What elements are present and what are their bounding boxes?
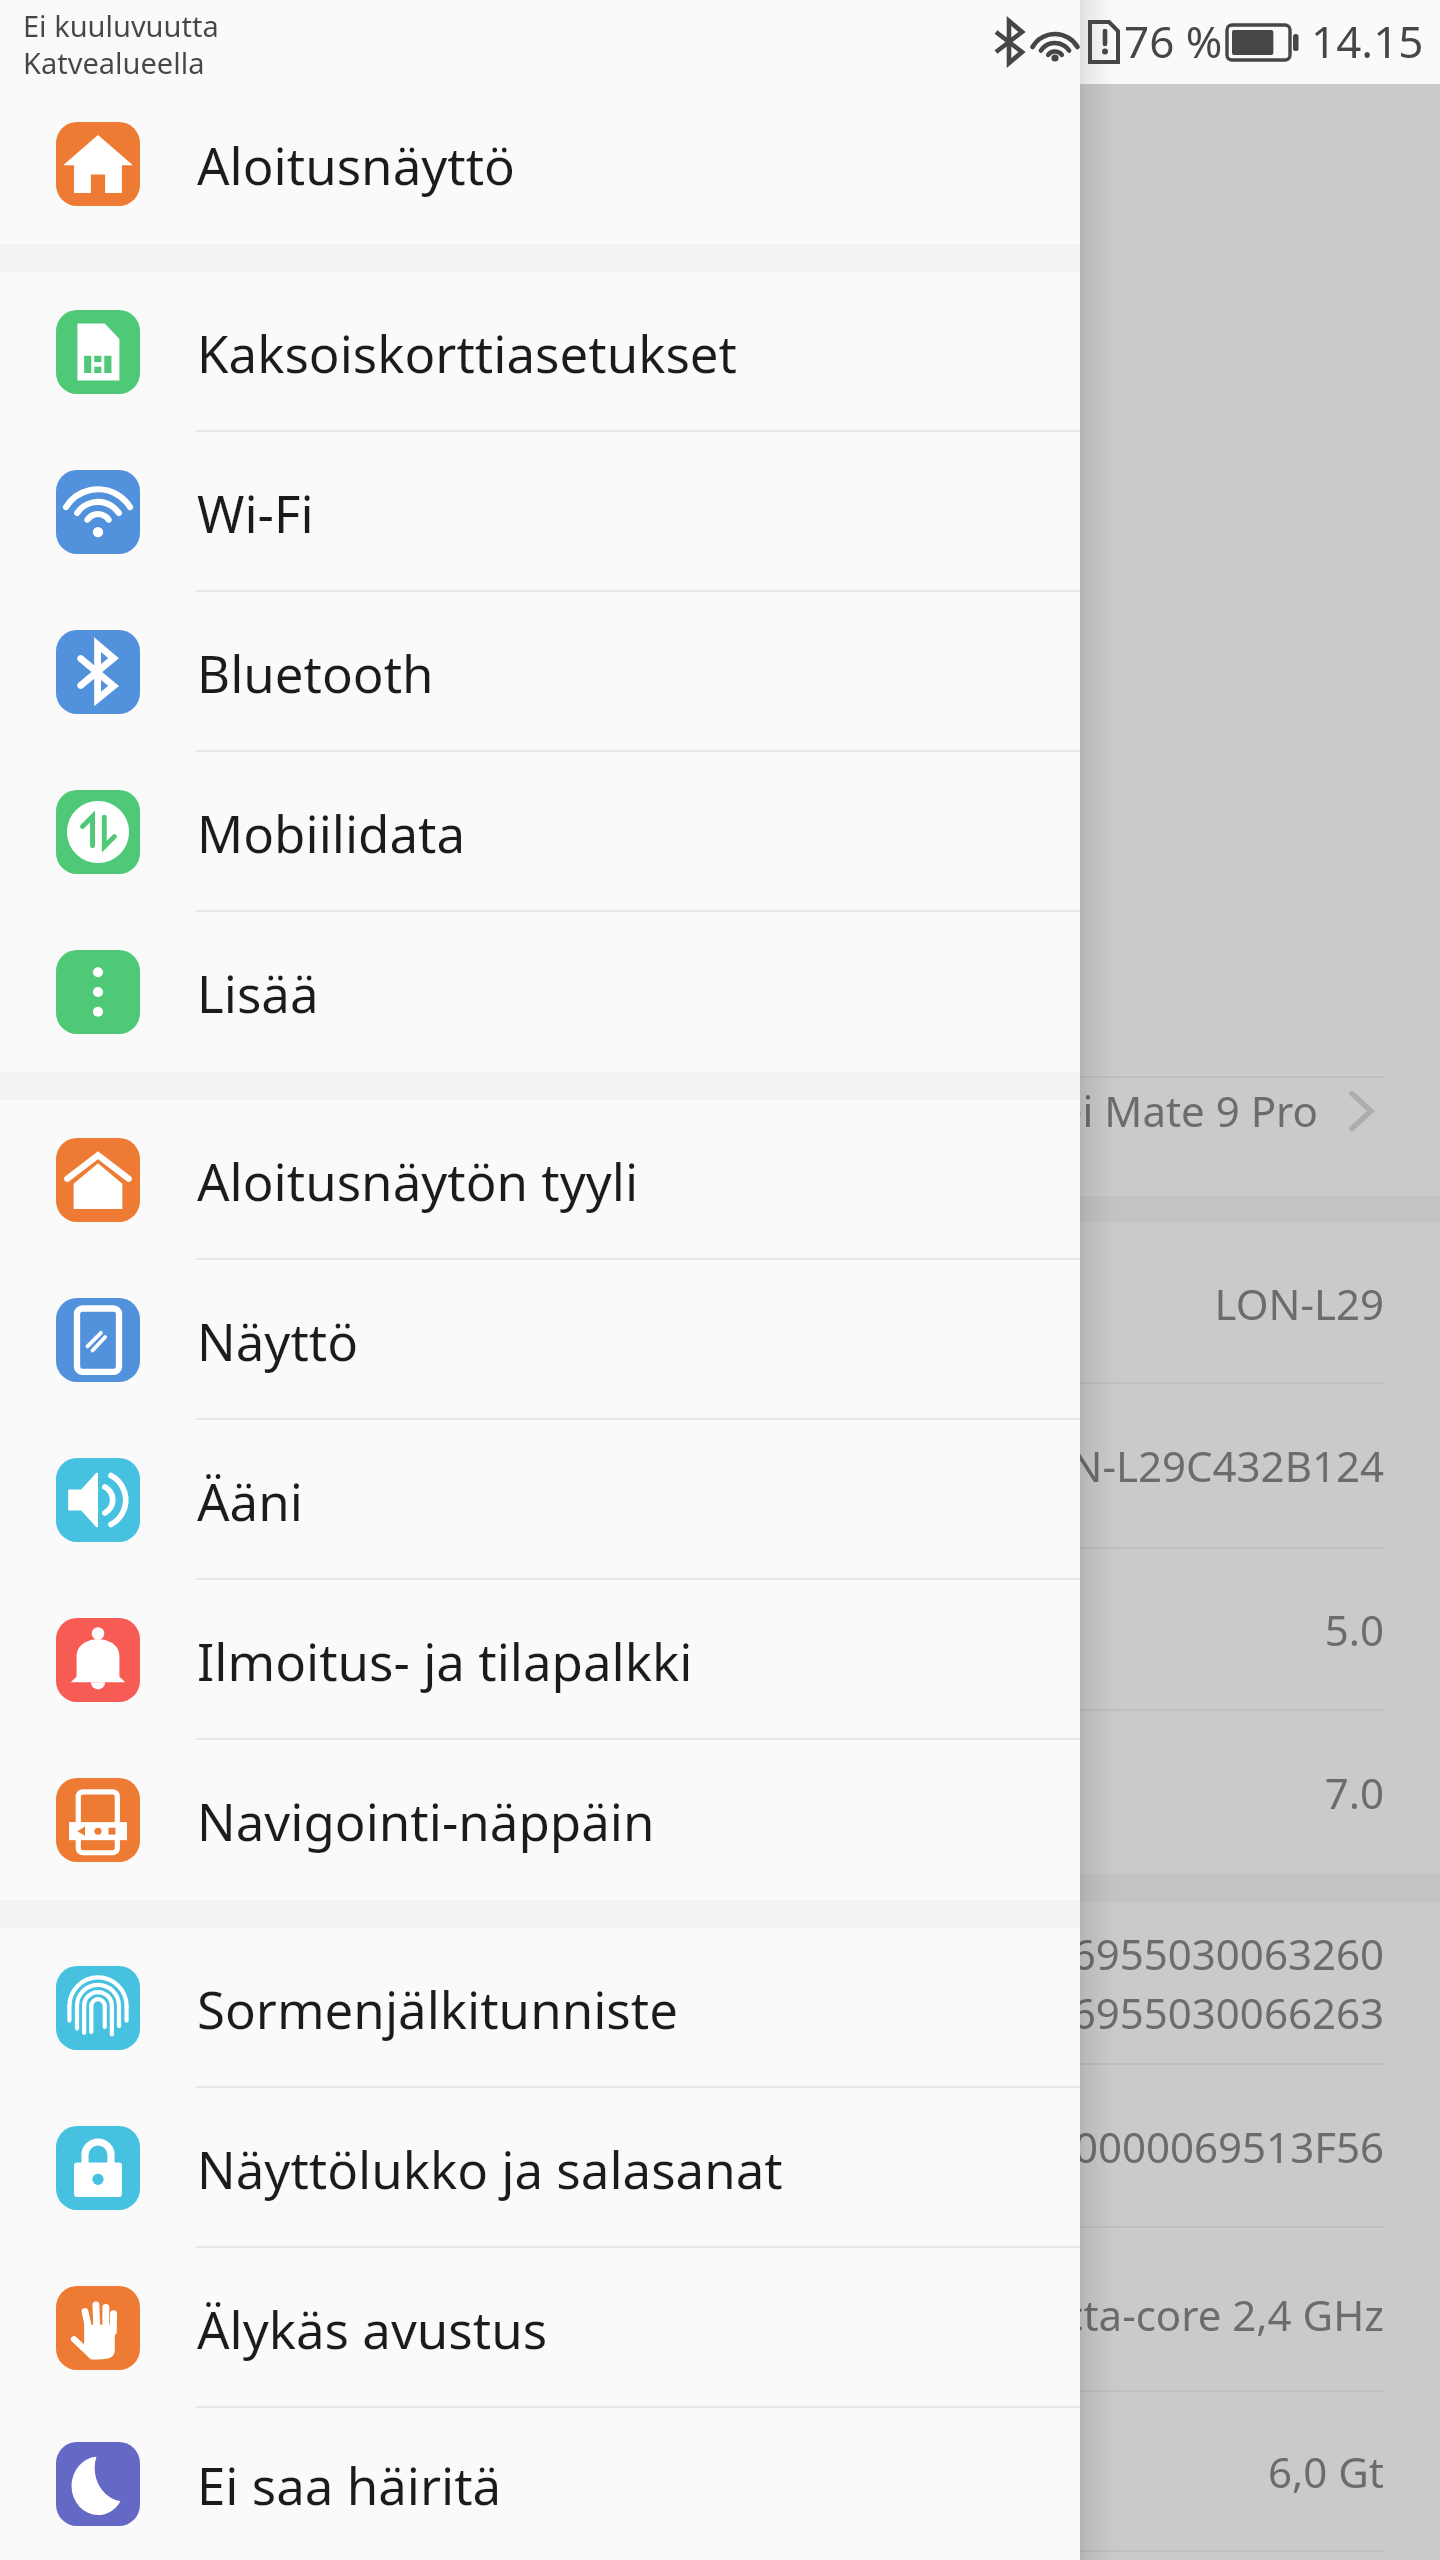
button[interactable]: Wi-Fi: [0, 432, 1080, 592]
staticText: Näyttölukko ja salasanat: [197, 2134, 783, 2203]
staticText: 86955030066263: [1047, 1984, 1384, 2041]
staticText: Aloitusnäytön tyyli: [197, 1146, 639, 1215]
button[interactable]: Lisää: [0, 912, 1080, 1072]
staticText: HiSilicon Kirin 960 Octa-core 2,4 GHz: [665, 2286, 1384, 2343]
staticText: Älykäs avustus: [197, 2294, 548, 2363]
staticText: Navigointi-näppäin: [197, 1786, 655, 1855]
staticText: Bluetooth: [197, 638, 434, 707]
button[interactable]: Aloitusnäytön tyyli: [0, 1100, 1080, 1260]
button[interactable]: Älykäs avustus: [0, 2248, 1080, 2408]
staticText: 86955030063260: [1047, 1925, 1384, 1982]
staticText: Ei saa häiritä: [197, 2450, 502, 2519]
button[interactable]: Navigointi-näppäin: [0, 1740, 1080, 1900]
staticText: 5.0: [1324, 1601, 1384, 1658]
button[interactable]: Ilmoitus- ja tilapalkki: [0, 1580, 1080, 1740]
staticText: Wi-Fi: [197, 478, 314, 547]
staticText: Ääni: [197, 1466, 303, 1535]
staticText: Aloitusnäyttö: [197, 130, 515, 199]
button[interactable]: Close navigation drawer: [1080, 0, 1440, 2560]
staticText: 76 %: [1124, 11, 1223, 71]
button[interactable]: Bluetooth: [0, 592, 1080, 752]
staticText: 7.0: [1324, 1764, 1384, 1821]
button[interactable]: Näyttö: [0, 1260, 1080, 1420]
button[interactable]: Näyttölukko ja salasanat: [0, 2088, 1080, 2248]
button[interactable]: Sormenjälkitunniste: [0, 1928, 1080, 2088]
staticText: LON-L29: [1214, 1275, 1384, 1332]
button[interactable]: Kaksoiskorttiasetukset: [0, 272, 1080, 432]
staticText: 14.15: [1311, 11, 1424, 71]
staticText: Ilmoitus- ja tilapalkki: [197, 1626, 693, 1695]
staticText: Kaksoiskorttiasetukset: [197, 318, 737, 387]
staticText: Lisää: [197, 958, 319, 1027]
staticText: 10C0000069513F56: [999, 2118, 1384, 2175]
staticText: 6,0 Gt: [1268, 2443, 1384, 2500]
staticText: LON-L29 8.0.0.124(C432) LON-L29C432B124: [523, 1437, 1384, 1494]
button[interactable]: Ääni: [0, 1420, 1080, 1580]
button[interactable]: Mobiilidata: [0, 752, 1080, 912]
button[interactable]: Ei saa häiritä: [0, 2408, 1080, 2560]
staticText: Huawei Mate 9 Pro: [945, 1082, 1318, 1139]
staticText: Mobiilidata: [197, 798, 466, 867]
button[interactable]: Aloitusnäyttö: [0, 84, 1080, 244]
staticText: Ei kuuluvuutta: [23, 6, 219, 45]
staticText: Näyttö: [197, 1306, 359, 1375]
staticText: Katvealueella: [23, 43, 205, 82]
staticText: Sormenjälkitunniste: [197, 1974, 678, 2043]
